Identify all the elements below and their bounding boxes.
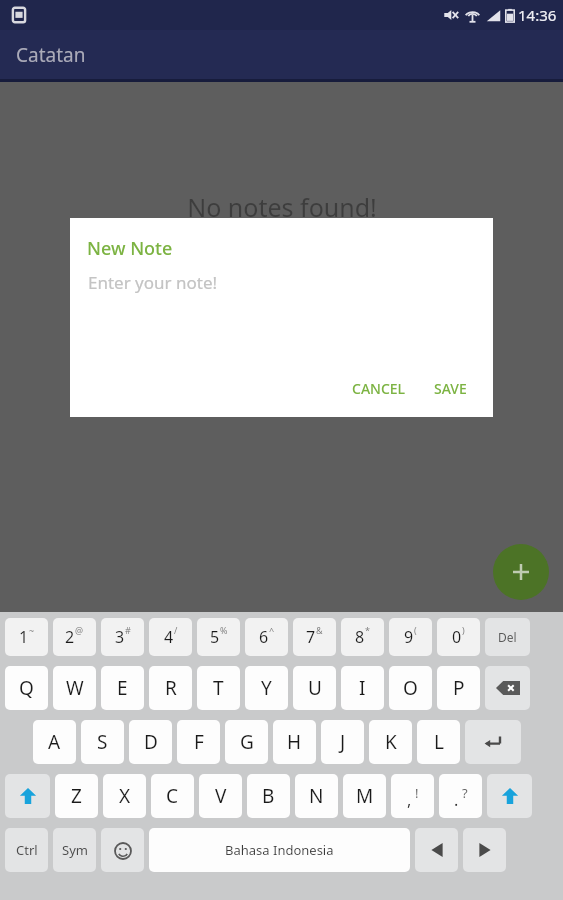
button[interactable]: CANCEL (346, 375, 412, 402)
button[interactable]: Bahasa Indonesia (149, 828, 410, 872)
staticText: * (365, 624, 370, 636)
button[interactable]: Enter (465, 720, 521, 764)
staticText: Ctrl (16, 841, 38, 859)
button[interactable]: Y (245, 666, 288, 710)
staticText: ( (414, 624, 417, 636)
staticText: CANCEL (352, 379, 406, 398)
button[interactable]: 7 (293, 618, 336, 656)
staticText: A (48, 729, 61, 755)
staticText: , (407, 789, 412, 811)
button[interactable]: 5 (197, 618, 240, 656)
staticText: New Note (87, 236, 173, 261)
button[interactable]: V (199, 774, 242, 818)
staticText: C (166, 783, 179, 809)
button[interactable]: J (321, 720, 364, 764)
button[interactable]: M (343, 774, 386, 818)
staticText: / (174, 624, 178, 636)
button[interactable]: 2 (53, 618, 96, 656)
button[interactable]: O (389, 666, 432, 710)
staticText: 7 (306, 626, 316, 648)
button[interactable]: C (151, 774, 194, 818)
button[interactable]: Z (55, 774, 98, 818)
button[interactable]: Shift (5, 774, 50, 818)
button[interactable]: B (247, 774, 290, 818)
button[interactable]: Ctrl (5, 828, 48, 872)
button[interactable]: Emoji (101, 828, 144, 872)
button[interactable]: 4 (149, 618, 192, 656)
staticText: Sym (62, 841, 88, 859)
staticText: 3 (115, 626, 125, 648)
staticText: U (308, 675, 322, 701)
button[interactable]: Left (415, 828, 458, 872)
button[interactable]: N (295, 774, 338, 818)
staticText: J (340, 729, 346, 755)
staticText: F (194, 729, 204, 755)
staticText: 0 (452, 626, 462, 648)
button[interactable]: 9 (389, 618, 432, 656)
button[interactable]: Add note (493, 544, 549, 600)
staticText: ? (462, 784, 468, 802)
staticText: N (309, 783, 324, 809)
button[interactable]: S (81, 720, 124, 764)
button[interactable]: P (437, 666, 480, 710)
staticText: B (262, 783, 275, 809)
staticText: Bahasa Indonesia (225, 841, 334, 859)
staticText: Catatan (16, 42, 86, 68)
button[interactable]: K (369, 720, 412, 764)
staticText: & (316, 624, 323, 636)
staticText: Z (71, 783, 82, 809)
staticText: V (215, 783, 227, 809)
button[interactable]: SAVE (428, 375, 473, 402)
staticText: 5 (210, 626, 220, 648)
staticText: Q (19, 675, 34, 701)
staticText: X (119, 783, 131, 809)
staticText: Y (261, 675, 272, 701)
button[interactable]: Sym (53, 828, 96, 872)
staticText: % (220, 624, 228, 636)
button[interactable]: . (439, 774, 482, 818)
button[interactable]: 1 (5, 618, 48, 656)
staticText: No notes found! (187, 190, 377, 224)
staticText: 6 (259, 626, 269, 648)
button[interactable]: 0 (437, 618, 480, 656)
staticText: T (213, 675, 224, 701)
button[interactable]: I (341, 666, 384, 710)
staticText: . (454, 789, 459, 811)
staticText: ^ (269, 624, 275, 636)
staticText: R (165, 675, 177, 701)
staticText: ) (462, 624, 465, 636)
button[interactable]: 8 (341, 618, 384, 656)
button[interactable]: U (293, 666, 336, 710)
staticText: 14:36 (518, 5, 557, 25)
button[interactable]: X (103, 774, 146, 818)
staticText: P (453, 675, 465, 701)
staticText: K (385, 729, 397, 755)
button[interactable]: L (417, 720, 460, 764)
staticText: D (144, 729, 158, 755)
button[interactable]: A (33, 720, 76, 764)
button[interactable]: Backspace (485, 666, 530, 710)
button[interactable]: G (225, 720, 268, 764)
button[interactable]: F (177, 720, 220, 764)
button[interactable]: H (273, 720, 316, 764)
staticText: O (403, 675, 418, 701)
button[interactable]: D (129, 720, 172, 764)
staticText: S (97, 729, 108, 755)
staticText: 2 (65, 626, 75, 648)
button[interactable]: Shift (487, 774, 532, 818)
button[interactable]: Right (463, 828, 506, 872)
button[interactable]: 3 (101, 618, 144, 656)
staticText: E (117, 675, 128, 701)
button[interactable]: Q (5, 666, 48, 710)
staticText: H (287, 729, 302, 755)
button[interactable]: W (53, 666, 96, 710)
button[interactable]: R (149, 666, 192, 710)
button[interactable]: 6 (245, 618, 288, 656)
button[interactable]: Del (485, 618, 530, 656)
button[interactable]: E (101, 666, 144, 710)
button[interactable]: , (391, 774, 434, 818)
button[interactable]: T (197, 666, 240, 710)
staticText: G (240, 729, 254, 755)
staticText: W (66, 675, 84, 701)
staticText: 8 (355, 626, 365, 648)
